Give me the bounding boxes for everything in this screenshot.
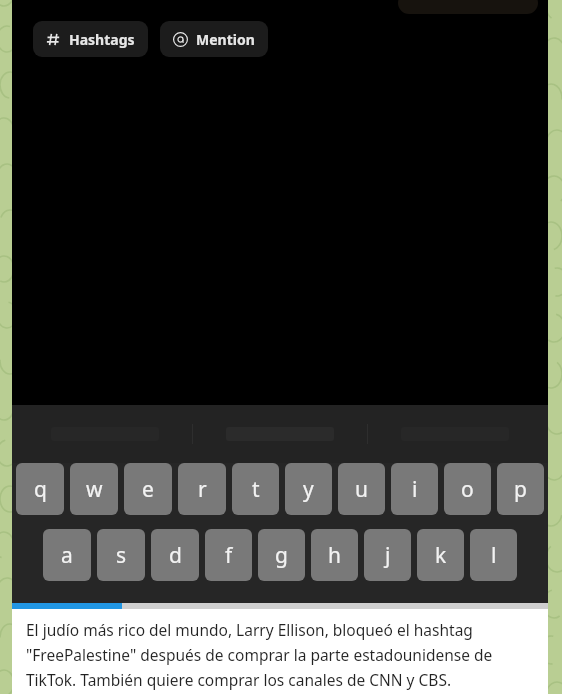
- staticText: l: [491, 541, 497, 570]
- staticText: u: [355, 475, 368, 504]
- button[interactable]: r: [178, 463, 226, 515]
- staticText: y: [303, 475, 314, 504]
- staticText: s: [116, 541, 127, 570]
- staticText: k: [435, 541, 447, 570]
- staticText: f: [225, 541, 233, 570]
- staticText: p: [514, 475, 527, 504]
- button[interactable]: y: [285, 463, 332, 515]
- button[interactable]: t: [232, 463, 279, 515]
- staticText: h: [328, 541, 341, 570]
- button[interactable]: Hashtags: [33, 21, 148, 57]
- button[interactable]: p: [497, 463, 544, 515]
- button[interactable]: j: [364, 529, 411, 581]
- button[interactable]: Mention: [160, 21, 268, 57]
- staticText: El judío más rico del mundo, Larry Ellis…: [26, 619, 536, 690]
- button[interactable]: o: [444, 463, 491, 515]
- staticText: e: [142, 475, 154, 504]
- staticText: w: [86, 475, 103, 504]
- staticText: Mention: [196, 30, 255, 49]
- button[interactable]: e: [124, 463, 172, 515]
- button[interactable]: l: [470, 529, 517, 581]
- button[interactable]: a: [43, 529, 91, 581]
- staticText: j: [385, 541, 391, 570]
- staticText: g: [275, 541, 288, 570]
- staticText: q: [34, 475, 47, 504]
- button[interactable]: u: [338, 463, 385, 515]
- staticText: d: [169, 541, 182, 570]
- button[interactable]: Toolbar action: [398, 0, 538, 14]
- button[interactable]: q: [16, 463, 64, 515]
- staticText: r: [198, 475, 207, 504]
- staticText: a: [61, 541, 73, 570]
- staticText: i: [412, 475, 418, 504]
- button[interactable]: i: [391, 463, 438, 515]
- button[interactable]: w: [70, 463, 118, 515]
- staticText: Hashtags: [69, 30, 135, 49]
- staticText: o: [461, 475, 474, 504]
- button[interactable]: s: [97, 529, 145, 581]
- button[interactable]: g: [258, 529, 305, 581]
- button[interactable]: d: [151, 529, 199, 581]
- button[interactable]: f: [205, 529, 252, 581]
- button[interactable]: h: [311, 529, 358, 581]
- button[interactable]: k: [417, 529, 464, 581]
- staticText: t: [252, 475, 260, 504]
